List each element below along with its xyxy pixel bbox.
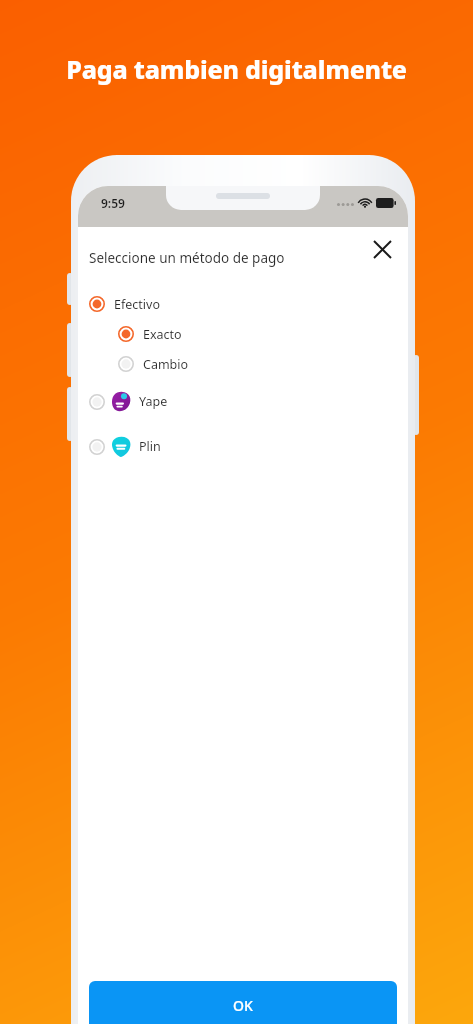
button[interactable]: Plin xyxy=(78,424,408,469)
staticText: Plin xyxy=(139,438,161,455)
staticText: Cambio xyxy=(143,356,189,373)
staticText: Exacto xyxy=(143,326,182,343)
staticText: Efectivo xyxy=(114,296,160,313)
staticText: Yape xyxy=(139,393,168,410)
button[interactable]: Cambio xyxy=(78,349,408,379)
button[interactable]: Exacto xyxy=(78,319,408,349)
button[interactable]: Yape xyxy=(78,379,408,424)
staticText: 9:59 xyxy=(101,195,125,211)
staticText: Paga tambien digitalmente xyxy=(66,52,407,86)
staticText: Seleccione un método de pago xyxy=(89,249,285,267)
button[interactable]: OK xyxy=(89,981,397,1024)
button[interactable]: Cerrar xyxy=(366,233,398,265)
button[interactable]: Efectivo xyxy=(78,289,408,319)
staticText: OK xyxy=(233,996,253,1015)
